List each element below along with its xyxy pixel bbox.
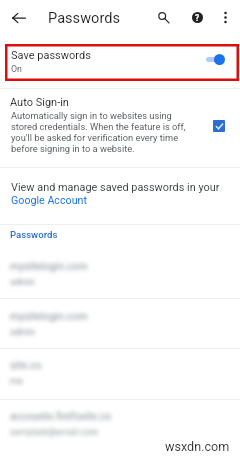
button[interactable]: Search xyxy=(153,7,174,28)
button[interactable]: accounts.firefoxite.co xyxy=(0,398,240,448)
button[interactable]: Back xyxy=(9,8,29,28)
staticText: ? xyxy=(195,13,200,23)
staticText: Passwords xyxy=(10,229,58,240)
staticText: sampladr@email.com xyxy=(10,427,98,438)
staticText: me xyxy=(10,376,23,387)
button[interactable]: Auto Sign-in xyxy=(0,89,240,167)
staticText: On xyxy=(11,64,22,74)
button[interactable]: More options xyxy=(215,7,236,28)
button[interactable]: site.co xyxy=(0,347,240,397)
staticText: site.co xyxy=(10,359,42,371)
button[interactable]: Save passwords xyxy=(0,42,240,82)
staticText: mysitelogin.com xyxy=(10,260,88,272)
staticText: Automatically sign in to websites using … xyxy=(11,110,186,154)
staticText: Save passwords xyxy=(11,49,91,62)
staticText: View and manage saved passwords in your xyxy=(11,181,220,194)
staticText: accounts.firefoxite.co xyxy=(10,410,112,422)
button[interactable]: mysitelogin.com xyxy=(0,248,240,298)
staticText: admin xyxy=(10,277,36,288)
staticText: Google Account xyxy=(11,194,87,207)
staticText: Passwords xyxy=(48,9,120,26)
button[interactable]: View and manage saved passwords in your xyxy=(0,168,240,224)
staticText: wsxdn.com xyxy=(165,439,230,454)
button[interactable]: Help xyxy=(187,7,208,28)
staticText: admin xyxy=(10,327,36,338)
staticText: mysitelogin.com xyxy=(10,310,88,322)
staticText: Auto Sign-in xyxy=(10,96,69,109)
button[interactable]: mysitelogin.com xyxy=(0,298,240,348)
